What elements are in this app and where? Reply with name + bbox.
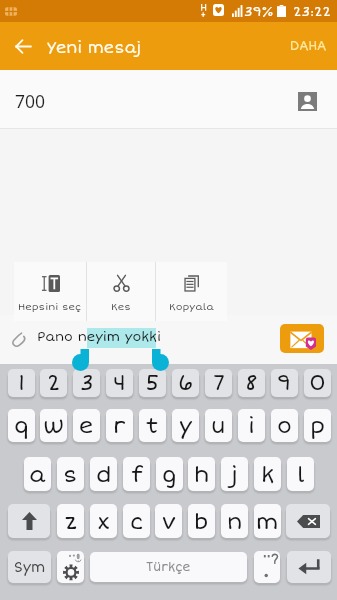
button[interactable]: 0: [304, 369, 331, 397]
button[interactable]: 4: [106, 369, 133, 397]
staticText: 39%: [244, 3, 274, 20]
staticText: o: [277, 412, 292, 439]
button[interactable]: s: [57, 457, 84, 491]
button[interactable]: p: [304, 409, 331, 442]
button[interactable]: k: [254, 457, 281, 491]
button[interactable]: d: [90, 457, 117, 491]
staticText: c: [130, 508, 144, 535]
staticText: Sym: [14, 559, 46, 576]
button[interactable]: 3: [73, 369, 100, 397]
staticText: w: [43, 412, 64, 439]
button[interactable]: 1: [8, 369, 35, 397]
button[interactable]: q: [8, 409, 35, 442]
button[interactable]: 6: [172, 369, 199, 397]
staticText: m: [256, 508, 279, 535]
staticText: k: [261, 461, 275, 488]
staticText: DAHA: [290, 39, 327, 54]
button[interactable]: m: [254, 504, 281, 538]
button[interactable]: Shift: [8, 504, 50, 538]
staticText: 0: [309, 370, 326, 396]
staticText: Türkçe: [146, 560, 191, 575]
staticText: f: [131, 461, 143, 488]
staticText: 6: [178, 370, 194, 396]
staticText: 3: [80, 370, 94, 396]
staticText: p: [310, 412, 326, 439]
staticText: Yeni mesaj: [47, 38, 142, 57]
button[interactable]: g: [156, 457, 183, 491]
staticText: q: [14, 412, 29, 439]
button[interactable]: 9: [271, 369, 298, 397]
staticText: Hepsini seç: [18, 301, 82, 313]
button[interactable]: Kopyala: [156, 262, 227, 321]
staticText: 1: [18, 370, 26, 396]
staticText: u: [211, 412, 226, 439]
staticText: v: [162, 508, 176, 535]
button[interactable]: Back: [3, 33, 43, 59]
staticText: h: [194, 461, 210, 488]
button[interactable]: r: [106, 409, 133, 442]
staticText: d: [96, 461, 112, 488]
staticText: y: [179, 412, 193, 439]
button[interactable]: h: [188, 457, 215, 491]
button[interactable]: Enter: [287, 551, 331, 583]
staticText: Pano neyim yokki: [37, 329, 161, 345]
button[interactable]: z: [57, 504, 84, 538]
button[interactable]: i: [238, 409, 265, 442]
staticText: 9: [277, 370, 292, 396]
staticText: 4: [113, 370, 126, 396]
button[interactable]: Choose contact: [298, 92, 317, 111]
button[interactable]: 5: [139, 369, 166, 397]
staticText: 7: [213, 370, 225, 396]
staticText: g: [162, 461, 177, 488]
button[interactable]: 7: [205, 369, 232, 397]
button[interactable]: 8: [238, 369, 265, 397]
staticText: 5: [145, 370, 160, 396]
button[interactable]: DAHA: [283, 34, 333, 58]
button[interactable]: Backspace: [286, 504, 330, 538]
staticText: z: [65, 508, 77, 535]
staticText: 8: [245, 370, 258, 396]
staticText: r: [113, 412, 126, 439]
button[interactable]: u: [205, 409, 232, 442]
staticText: a: [29, 461, 46, 488]
staticText: l: [297, 461, 305, 488]
staticText: Kopyala: [169, 301, 214, 313]
button[interactable]: a: [24, 457, 51, 491]
button[interactable]: e: [73, 409, 100, 442]
button[interactable]: Kes: [87, 262, 155, 321]
staticText: x: [97, 508, 110, 535]
staticText: s: [63, 461, 78, 488]
button[interactable]: x: [90, 504, 117, 538]
staticText: 2: [47, 370, 61, 396]
button[interactable]: y: [172, 409, 199, 442]
button[interactable]: Keyboard settings: [57, 551, 84, 583]
button[interactable]: t: [139, 409, 166, 442]
button[interactable]: Send message: [280, 324, 324, 353]
staticText: 23:22: [293, 3, 332, 20]
button[interactable]: f: [123, 457, 150, 491]
button[interactable]: c: [123, 504, 150, 538]
button[interactable]: Türkçe: [90, 552, 247, 582]
staticText: e: [79, 412, 94, 439]
button[interactable]: n: [221, 504, 248, 538]
button[interactable]: Attach file: [6, 328, 30, 352]
button[interactable]: 2: [40, 369, 67, 397]
button[interactable]: Sym: [8, 551, 51, 583]
staticText: b: [194, 508, 209, 535]
button[interactable]: w: [40, 409, 67, 442]
button[interactable]: b: [188, 504, 215, 538]
staticText: 700: [15, 89, 46, 113]
button[interactable]: j: [221, 457, 248, 491]
button[interactable]: Punctuation: [254, 551, 280, 583]
staticText: t: [146, 412, 159, 439]
button[interactable]: v: [155, 504, 182, 538]
button[interactable]: l: [287, 457, 314, 491]
button[interactable]: Hepsini seç: [14, 262, 86, 321]
staticText: n: [227, 508, 243, 535]
staticText: Kes: [111, 301, 131, 313]
staticText: i: [248, 412, 255, 439]
staticText: j: [231, 461, 238, 488]
button[interactable]: o: [271, 409, 298, 442]
